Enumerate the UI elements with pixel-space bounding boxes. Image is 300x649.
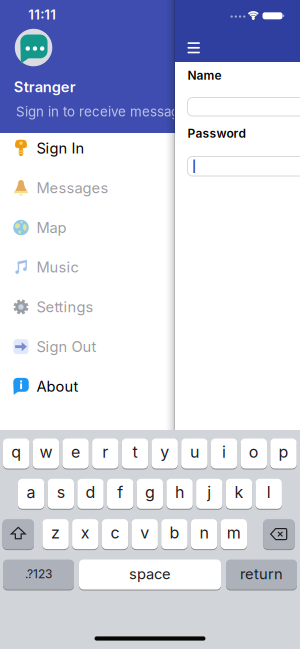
button[interactable]: About (0, 366, 174, 406)
staticText: Sign In (36, 139, 84, 157)
staticText: j (207, 483, 211, 502)
staticText: Music (36, 259, 78, 276)
staticText: h (175, 483, 184, 502)
button[interactable]: Messages (0, 168, 174, 208)
staticText: y (160, 443, 169, 461)
button[interactable]: q (3, 438, 29, 469)
button[interactable]: t (122, 438, 148, 469)
button[interactable]: k (226, 478, 252, 509)
staticText: w (39, 443, 52, 461)
button[interactable]: i (211, 438, 237, 469)
button[interactable]: f (107, 478, 133, 509)
button[interactable] (187, 156, 300, 176)
staticText: Sign in to receive messages (16, 104, 194, 119)
button[interactable] (187, 97, 300, 116)
button[interactable]: y (151, 438, 178, 469)
button[interactable]: v (131, 519, 158, 550)
button[interactable]: space (79, 559, 221, 590)
staticText: Settings (36, 298, 93, 316)
staticText: space (129, 565, 171, 583)
button[interactable] (2, 519, 34, 550)
staticText: p (278, 443, 288, 461)
staticText: m (227, 523, 241, 542)
button[interactable]: .?123 (3, 559, 74, 590)
button[interactable]: Sign Out (0, 327, 174, 366)
button[interactable] (263, 519, 295, 550)
button[interactable]: z (42, 519, 69, 550)
staticText: Messages (36, 179, 108, 196)
button[interactable]: Music (0, 247, 174, 287)
button[interactable]: l (255, 478, 282, 509)
staticText: r (102, 443, 108, 461)
staticText: a (27, 483, 36, 502)
button[interactable]: Settings (0, 287, 174, 327)
button[interactable]: r (92, 438, 118, 469)
staticText: d (85, 483, 95, 502)
button[interactable]: g (137, 478, 163, 509)
staticText: s (57, 483, 65, 502)
staticText: c (110, 523, 119, 542)
button[interactable]: a (18, 478, 44, 509)
button[interactable]: j (196, 478, 222, 509)
button[interactable]: b (161, 519, 188, 550)
button[interactable]: e (62, 438, 89, 469)
staticText: return (240, 565, 283, 583)
button[interactable]: c (102, 519, 128, 550)
staticText: x (81, 523, 90, 542)
button[interactable]: d (77, 478, 104, 509)
staticText: n (200, 523, 209, 542)
staticText: e (71, 443, 80, 461)
staticText: u (190, 443, 199, 461)
button[interactable]: Sign In (0, 128, 174, 168)
staticText: t (132, 443, 137, 461)
staticText: 11:11 (28, 7, 56, 22)
staticText: Password (187, 126, 245, 140)
button[interactable]: Map (0, 208, 174, 247)
staticText: v (140, 523, 149, 542)
staticText: l (267, 483, 271, 502)
staticText: o (249, 443, 259, 461)
staticText: Name (187, 68, 221, 82)
button[interactable]: o (241, 438, 267, 469)
staticText: About (36, 378, 78, 395)
button[interactable] (184, 38, 204, 58)
button[interactable]: w (33, 438, 59, 469)
button[interactable]: s (48, 478, 74, 509)
button[interactable]: n (191, 519, 217, 550)
button[interactable]: x (72, 519, 98, 550)
button[interactable]: m (221, 519, 247, 550)
staticText: z (51, 523, 60, 542)
button[interactable]: p (270, 438, 297, 469)
staticText: g (145, 483, 155, 502)
staticText: Map (36, 219, 66, 236)
staticText: i (222, 443, 226, 461)
staticText: b (169, 523, 179, 542)
button[interactable]: h (166, 478, 193, 509)
staticText: .?123 (25, 567, 52, 581)
staticText: q (11, 443, 21, 461)
staticText: k (234, 483, 243, 502)
staticText: f (117, 483, 123, 502)
staticText: Sign Out (36, 338, 96, 355)
staticText: Stranger (14, 78, 76, 96)
button[interactable]: return (226, 559, 297, 590)
button[interactable]: u (181, 438, 208, 469)
